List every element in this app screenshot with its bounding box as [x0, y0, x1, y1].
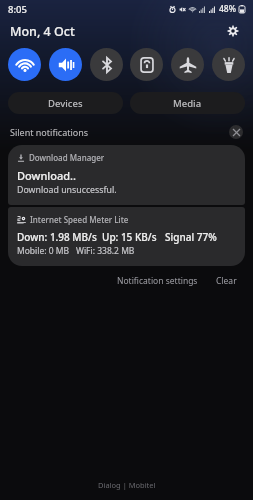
button[interactable]: Settings	[223, 21, 243, 41]
button[interactable]: Clear	[212, 272, 241, 290]
staticText: WiFi: 338.2 MB	[76, 245, 135, 257]
staticText: Up: 15 KB/s	[102, 230, 157, 244]
staticText: 48%	[219, 3, 236, 15]
button[interactable]: Notification settings	[113, 272, 202, 290]
staticText: Signal 77%	[165, 230, 217, 244]
staticText: Down: 1.98 MB/s	[17, 230, 97, 244]
staticText: Dialog | Mobitel	[98, 480, 156, 490]
button[interactable]: Flashlight	[212, 48, 245, 81]
button[interactable]: Bluetooth	[90, 48, 123, 81]
button[interactable]: Download Manager	[8, 145, 245, 205]
button[interactable]: Wi-Fi	[8, 48, 41, 81]
button[interactable]: Internet Speed Meter Lite	[8, 207, 245, 266]
staticText: 8:05	[8, 3, 27, 16]
button[interactable]: Dismiss silent notifications	[229, 125, 243, 139]
staticText: Download..	[17, 168, 77, 183]
staticText: Silent notifications	[10, 126, 89, 138]
staticText: Mobile: 0 MB	[17, 245, 70, 257]
button[interactable]: Devices	[8, 92, 123, 114]
button[interactable]: Mute	[49, 48, 82, 81]
staticText: Media	[173, 97, 202, 110]
staticText: Mon, 4 Oct	[10, 23, 75, 40]
staticText: Clear	[216, 275, 237, 287]
staticText: Internet Speed Meter Lite	[30, 214, 129, 225]
staticText: Devices	[48, 97, 83, 110]
staticText: Download Manager	[29, 152, 105, 163]
button[interactable]: Airplane mode	[171, 48, 204, 81]
button[interactable]: Media	[130, 92, 245, 114]
button[interactable]: Device lock	[130, 48, 163, 81]
staticText: Download unsuccessful.	[17, 184, 117, 196]
staticText: Notification settings	[117, 275, 198, 287]
